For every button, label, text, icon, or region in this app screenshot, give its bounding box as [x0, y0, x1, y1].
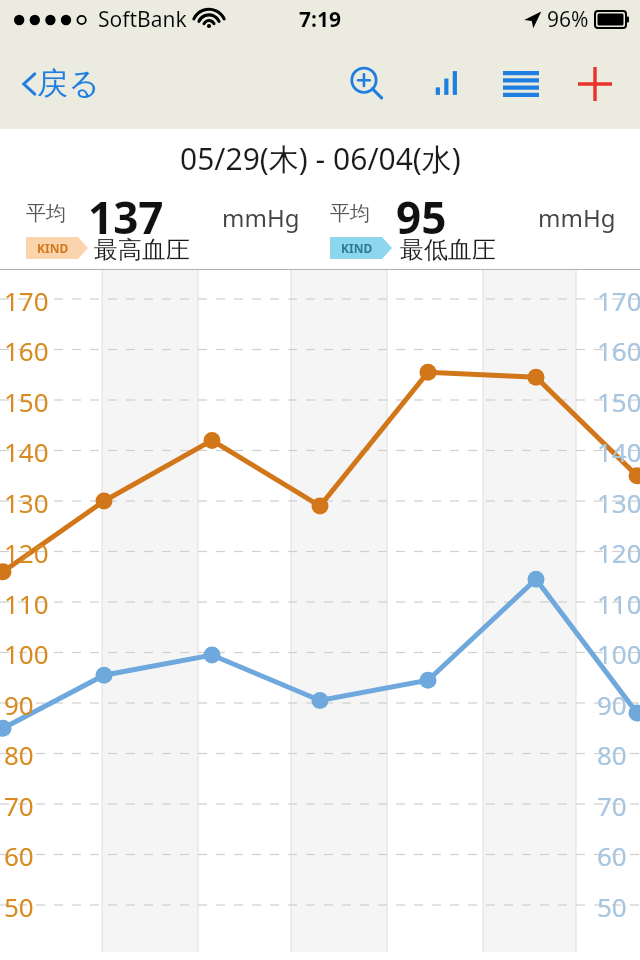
- staticText: KIND: [341, 240, 373, 256]
- staticText: 150: [597, 384, 640, 419]
- staticText: 最低血圧: [400, 235, 496, 265]
- staticText: 110: [597, 586, 640, 621]
- staticText: 100: [597, 636, 640, 671]
- button[interactable]: Statistics: [416, 54, 476, 114]
- button[interactable]: 戻る: [16, 58, 106, 109]
- staticText: 50: [4, 889, 34, 924]
- staticText: 120: [4, 535, 49, 570]
- staticText: 110: [4, 586, 49, 621]
- button[interactable]: Add: [564, 54, 626, 114]
- staticText: 170: [597, 283, 640, 318]
- staticText: 120: [597, 535, 640, 570]
- staticText: mmHg: [538, 201, 616, 234]
- staticText: 60: [597, 838, 627, 873]
- staticText: 130: [597, 485, 640, 520]
- staticText: 80: [597, 737, 627, 772]
- staticText: 140: [597, 434, 640, 469]
- staticText: 100: [4, 636, 49, 671]
- staticText: 70: [4, 788, 34, 823]
- staticText: 最高血圧: [94, 235, 190, 265]
- staticText: mmHg: [222, 201, 300, 234]
- staticText: 137: [88, 187, 164, 247]
- staticText: 160: [4, 333, 49, 368]
- staticText: 70: [597, 788, 627, 823]
- staticText: 170: [4, 283, 49, 318]
- staticText: 140: [4, 434, 49, 469]
- staticText: KIND: [37, 240, 69, 256]
- staticText: 160: [597, 333, 640, 368]
- staticText: 平均: [26, 201, 66, 226]
- staticText: 平均: [330, 201, 370, 226]
- staticText: 7:19: [299, 5, 341, 34]
- staticText: 50: [597, 889, 627, 924]
- staticText: 戻る: [37, 64, 100, 103]
- staticText: 90: [597, 687, 627, 722]
- staticText: 150: [4, 384, 49, 419]
- staticText: 96%: [547, 5, 589, 34]
- button[interactable]: List: [490, 54, 552, 114]
- staticText: 95: [396, 187, 447, 247]
- staticText: 05/29(木) - 06/04(水): [180, 138, 461, 179]
- staticText: SoftBank: [98, 5, 187, 34]
- staticText: 60: [4, 838, 34, 873]
- staticText: 130: [4, 485, 49, 520]
- staticText: 80: [4, 737, 34, 772]
- button[interactable]: Zoom in: [334, 54, 400, 114]
- staticText: 90: [4, 687, 34, 722]
